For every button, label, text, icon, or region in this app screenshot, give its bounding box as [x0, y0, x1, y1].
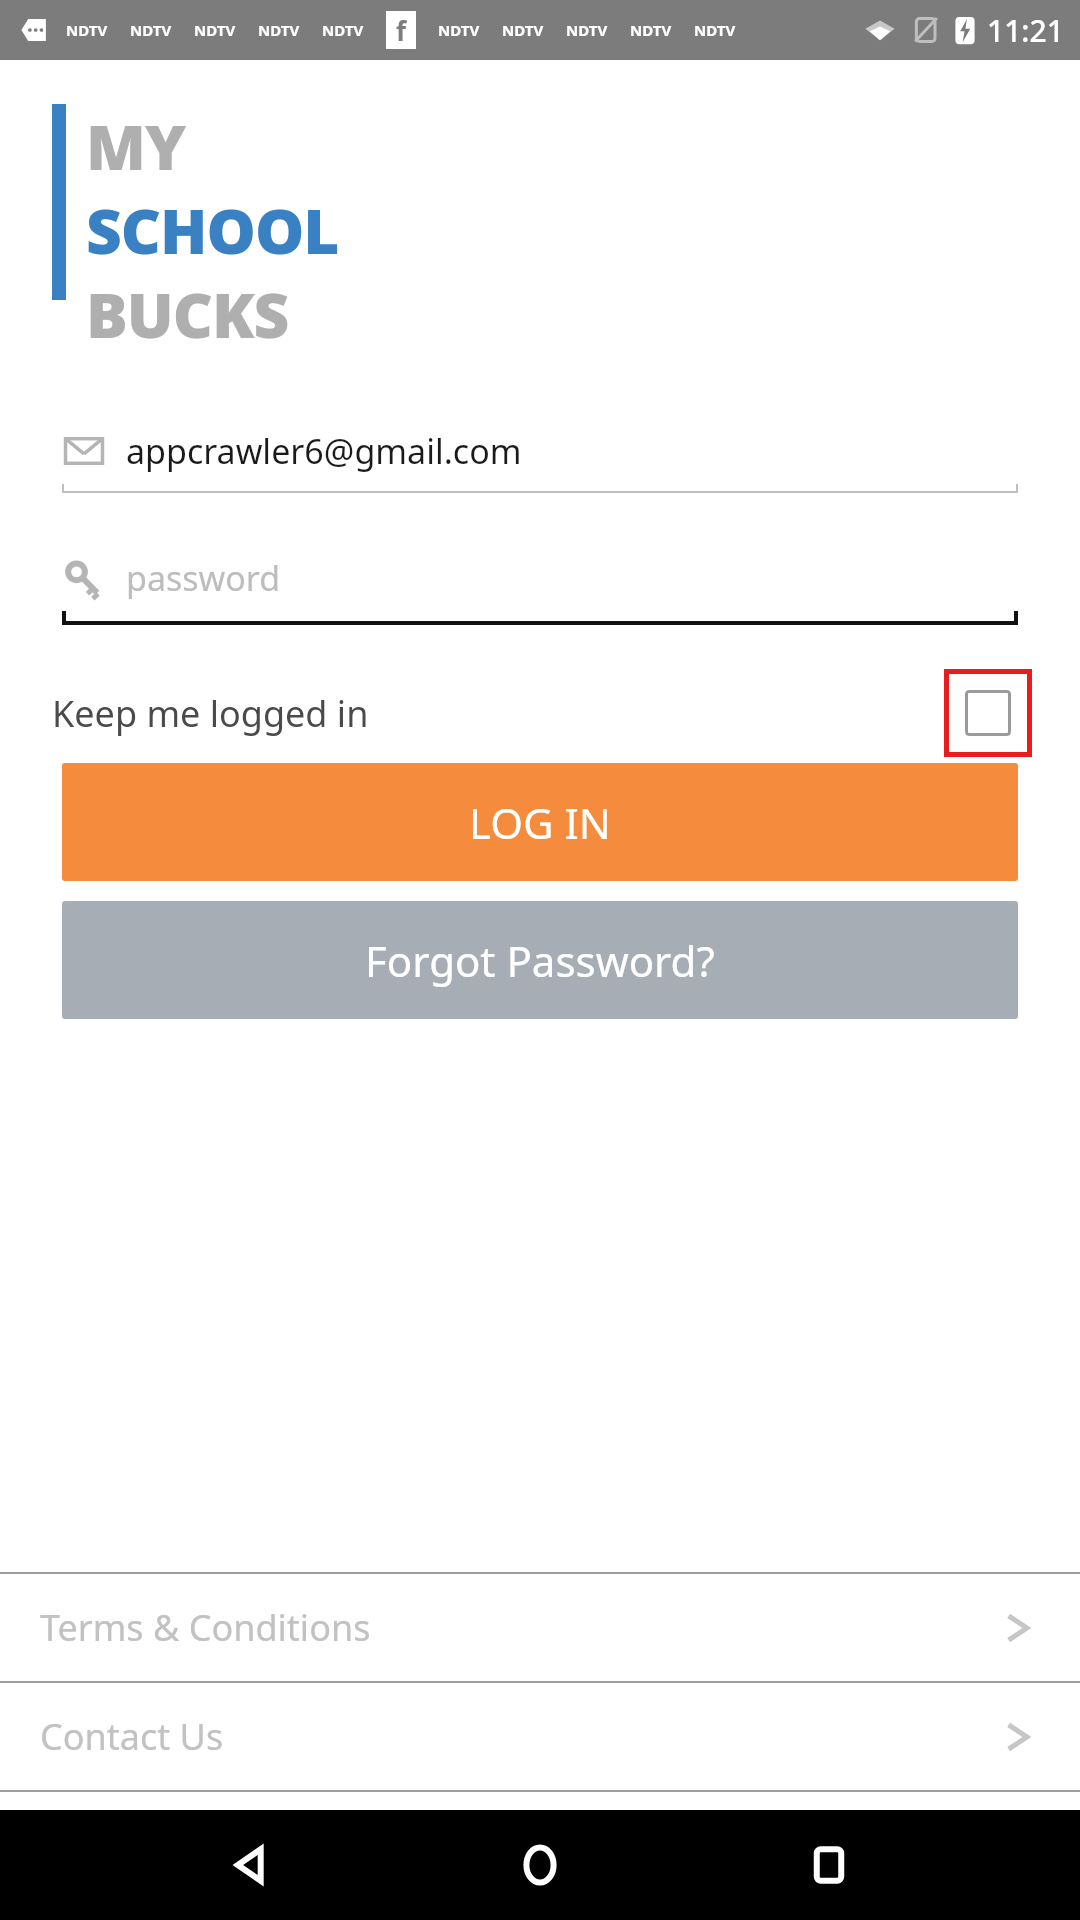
staticText: SCHOOL	[86, 188, 339, 272]
staticText: Contact Us	[40, 1712, 224, 1761]
button[interactable]: Forgot Password?	[62, 901, 1018, 1019]
staticText: NDTV	[130, 20, 172, 40]
staticText: LOG IN	[469, 794, 611, 851]
staticText: Keep me logged in	[52, 689, 369, 738]
button[interactable]: Contact Us	[0, 1683, 1080, 1790]
button[interactable]: Home	[502, 1827, 578, 1903]
staticText: NDTV	[258, 20, 300, 40]
button[interactable]: Back	[213, 1827, 289, 1903]
staticText: password	[126, 555, 281, 601]
staticText: NDTV	[694, 20, 736, 40]
staticText: NDTV	[438, 20, 480, 40]
staticText: Terms & Conditions	[40, 1603, 371, 1652]
staticText: NDTV	[502, 20, 544, 40]
staticText: f	[396, 13, 407, 48]
staticText: NDTV	[66, 20, 108, 40]
button[interactable]: Recent apps	[791, 1827, 867, 1903]
staticText: MY	[86, 104, 186, 188]
staticText: NDTV	[322, 20, 364, 40]
staticText: 11:21	[987, 10, 1064, 51]
button[interactable]: Keep me logged in checkbox	[944, 669, 1032, 757]
staticText: NDTV	[566, 20, 608, 40]
staticText: BUCKS	[86, 272, 289, 356]
staticText: NDTV	[194, 20, 236, 40]
staticText: Forgot Password?	[365, 932, 715, 989]
button[interactable]: LOG IN	[62, 763, 1018, 881]
staticText: appcrawler6@gmail.com	[126, 428, 522, 474]
button[interactable]: Terms & Conditions	[0, 1574, 1080, 1681]
staticText: NDTV	[630, 20, 672, 40]
